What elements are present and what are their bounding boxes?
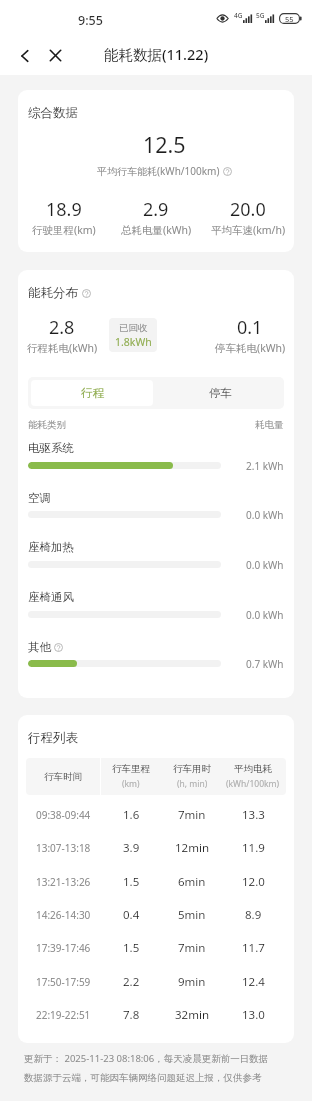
staticText: 20.0 [230,197,266,222]
staticText: 18.9 [46,197,82,222]
staticText: 4G [234,11,243,20]
staticText: 8.9 [245,907,262,923]
staticText: 平均电耗 [234,763,272,775]
staticText: 已回收 [119,322,148,334]
staticText: 行车里程 [112,763,150,775]
staticText: 22:19-22:51 [36,1008,91,1022]
button[interactable]: 停车 [156,377,284,409]
staticText: 能耗分布 [28,285,78,301]
staticText: 9min [178,974,206,990]
staticText: 平均车速(km/h) [211,223,286,237]
button[interactable]: Close [41,41,70,70]
button[interactable]: 14:26-14:30 [26,898,286,931]
staticText: 座椅通风 [28,590,74,604]
staticText: 停车耗电(kWh) [215,341,286,355]
staticText: 行程列表 [28,730,78,746]
staticText: 更新于： 2025-11-23 08:18:06，每天凌晨更新前一日数据 [24,1052,269,1065]
staticText: 12min [175,840,209,856]
staticText: 13:21-13:26 [36,875,91,889]
staticText: 0.4 [123,907,140,923]
staticText: 7min [178,940,206,956]
staticText: 1.5 [123,874,140,890]
staticText: 平均行车能耗(kWh/100km) [97,164,220,178]
staticText: 行程耗电(kWh) [27,341,98,355]
staticText: 数据源于云端，可能因车辆网络问题延迟上报，仅供参考 [24,1072,262,1084]
staticText: 2.1 kWh [246,459,284,473]
staticText: 行驶里程(km) [32,223,96,237]
staticText: 0.0 kWh [246,608,284,622]
button[interactable]: 行程 [31,380,153,406]
staticText: 1.5 [123,940,140,956]
staticText: 6min [178,874,206,890]
staticText: 0.1 [237,315,263,340]
staticText: 其他 [28,640,51,654]
staticText: (kWh/100km) [226,778,280,790]
staticText: 综合数据 [28,105,78,121]
staticText: 耗电量 [255,419,284,431]
staticText: 停车 [209,386,232,400]
button[interactable]: 13:21-13:26 [26,865,286,898]
button[interactable]: 13:07-13:18 [26,831,286,864]
staticText: 55 [285,14,294,24]
staticText: 17:50-17:59 [36,975,91,989]
staticText: 11.9 [242,840,265,856]
button[interactable]: 17:50-17:59 [26,965,286,998]
staticText: 能耗类别 [28,419,66,431]
staticText: (km) [122,778,140,790]
staticText: 0.0 kWh [246,558,284,572]
staticText: 13.3 [242,807,265,823]
staticText: 3.9 [123,840,140,856]
staticText: 12.4 [242,974,265,990]
staticText: 2.8 [49,315,75,340]
staticText: 13:07-13:18 [36,841,91,855]
staticText: 14:26-14:30 [36,908,91,922]
staticText: 1.8kWh [115,335,152,349]
staticText: 09:38-09:44 [36,808,91,822]
staticText: 13.0 [242,1007,265,1023]
staticText: 空调 [28,491,51,505]
staticText: 9:55 [78,12,103,29]
button[interactable]: 09:38-09:44 [26,798,286,831]
staticText: 5min [178,907,206,923]
staticText: 行程 [81,386,104,400]
staticText: 1.6 [123,807,140,823]
staticText: 座椅加热 [28,540,74,554]
staticText: 7.8 [123,1007,140,1023]
staticText: 17:39-17:46 [36,941,91,955]
staticText: 2.2 [123,974,140,990]
button[interactable]: 22:19-22:51 [26,998,286,1031]
staticText: 行车时间 [44,771,82,783]
staticText: 7min [178,807,206,823]
button[interactable]: Back [10,41,39,70]
staticText: 电驱系统 [28,441,74,455]
staticText: 0.0 kWh [246,508,284,522]
staticText: 5G [256,11,265,20]
staticText: 12.0 [242,874,265,890]
staticText: 能耗数据(11.22) [104,44,209,64]
staticText: 12.5 [143,130,186,159]
staticText: 2.9 [143,197,169,222]
staticText: 32min [175,1007,209,1023]
staticText: (h, min) [177,778,208,790]
staticText: 行车用时 [173,763,211,775]
staticText: 总耗电量(kWh) [121,223,192,237]
staticText: 0.7 kWh [246,657,284,671]
button[interactable]: 17:39-17:46 [26,931,286,964]
staticText: 11.7 [242,940,265,956]
